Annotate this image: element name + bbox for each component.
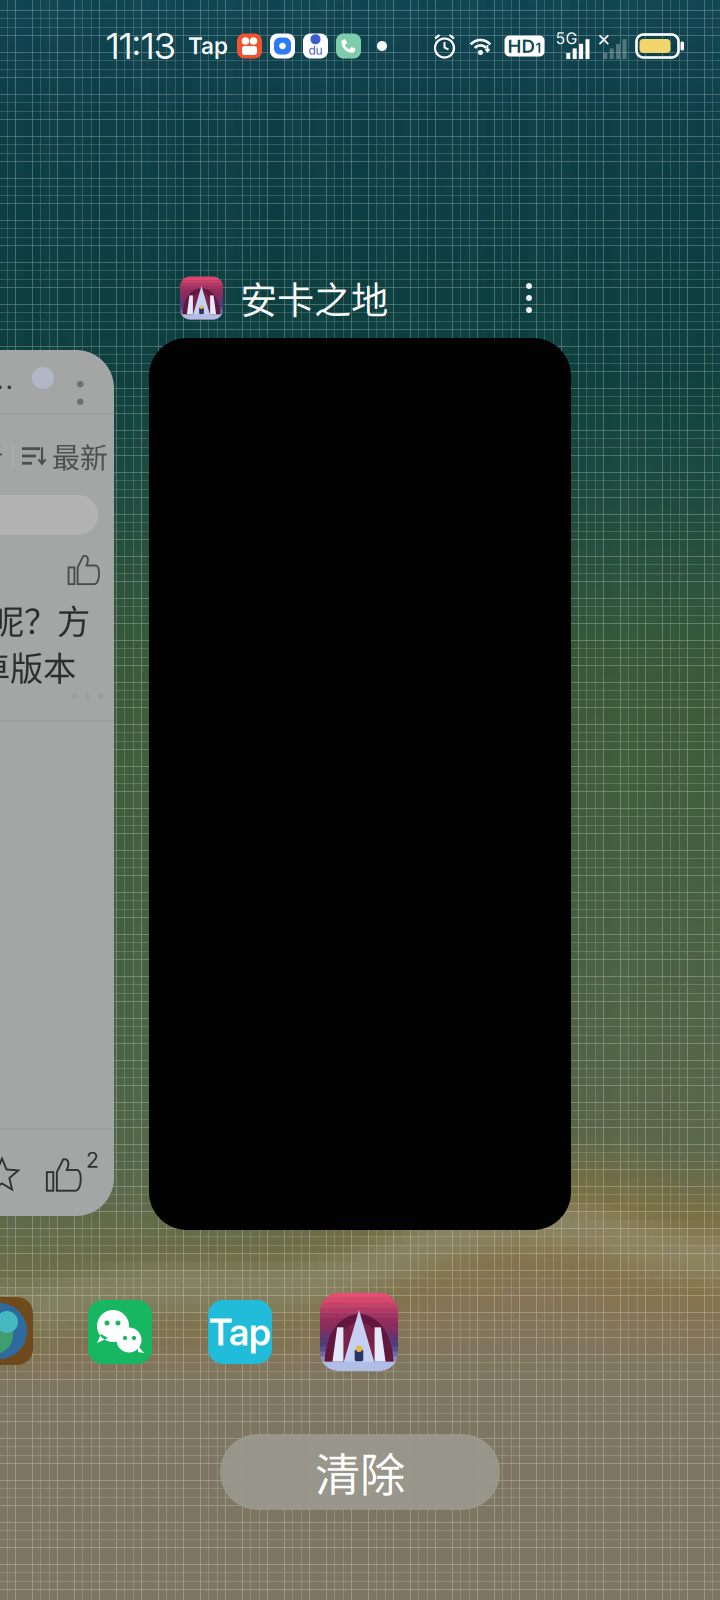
staticText: 1 <box>535 40 541 56</box>
button[interactable]: TapTap <box>208 1300 272 1364</box>
staticText: 帖子详情… <box>0 366 14 406</box>
staticText: 5G <box>555 29 577 48</box>
button[interactable]: Game <box>0 1297 33 1365</box>
staticText: ✕ <box>596 30 611 50</box>
staticText: 为什么不去的呢？方 <box>0 595 90 643</box>
staticText: HD <box>507 35 534 57</box>
staticText: 便兼容和安卓版本 <box>0 642 76 690</box>
button[interactable]: WeChat <box>88 1300 152 1364</box>
button[interactable]: 清除 <box>220 1434 500 1510</box>
staticText: 11:13 <box>106 24 176 68</box>
button[interactable]: Anka <box>320 1293 398 1371</box>
staticText: du <box>308 43 322 58</box>
staticText: 安卡之地 <box>240 271 388 325</box>
staticText: 清除 <box>315 1439 405 1505</box>
staticText: Tap <box>188 32 228 60</box>
staticText: Tap <box>209 1309 271 1355</box>
staticText: 作者 <box>0 436 3 476</box>
button[interactable]: More options <box>504 271 554 325</box>
staticText: 最新 <box>52 436 108 476</box>
staticText: 2 <box>86 1147 99 1173</box>
